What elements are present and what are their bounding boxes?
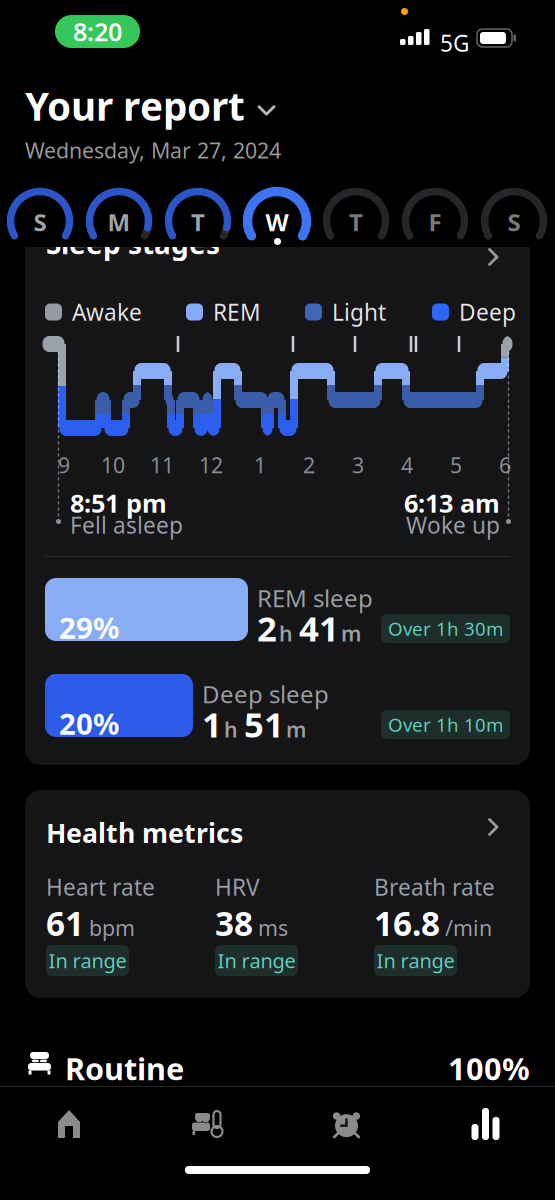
staticText: Heart rate (46, 872, 155, 902)
button[interactable]: F (0, 0, 555, 1200)
staticText: Breath rate (374, 872, 495, 902)
staticText: 8:51 pm (70, 486, 167, 520)
staticText: Your report (25, 80, 245, 131)
button[interactable]: M (0, 0, 555, 1200)
staticText: Sleep stages (46, 225, 220, 262)
button[interactable]: Sleep stages (46, 247, 508, 267)
staticText: REM sleep (257, 582, 373, 614)
staticText: In range (217, 947, 295, 974)
staticText: 11 (150, 451, 174, 479)
staticText: 5 (450, 451, 462, 479)
button[interactable]: W (0, 0, 555, 1200)
staticText: 20% (59, 704, 119, 743)
button[interactable]: T (0, 0, 555, 1200)
staticText: 1 (202, 701, 222, 747)
staticText: S (33, 206, 46, 238)
staticText: T (349, 206, 363, 238)
staticText: 12 (199, 451, 223, 479)
staticText: bpm (89, 914, 135, 942)
staticText: Routine (65, 1048, 184, 1089)
staticText: In range (376, 947, 454, 974)
staticText: 3 (352, 451, 364, 479)
staticText: REM (213, 297, 261, 327)
staticText: h (224, 715, 238, 743)
button[interactable] (138, 1095, 277, 1153)
staticText: 29% (59, 608, 119, 647)
button[interactable]: Health metrics (46, 815, 508, 841)
staticText: 100% (448, 1048, 530, 1089)
staticText: In range (48, 947, 126, 974)
button[interactable] (416, 1095, 555, 1153)
staticText: h (279, 619, 293, 647)
staticText: Light (332, 297, 386, 327)
button[interactable] (277, 1095, 416, 1153)
button[interactable]: 8:20 (55, 15, 140, 48)
button[interactable]: T (0, 0, 555, 1200)
staticText: Fell asleep (70, 510, 183, 540)
button[interactable]: Routine (25, 1048, 530, 1078)
staticText: 8:20 (73, 15, 122, 48)
staticText: Woke up (406, 510, 500, 540)
staticText: 5G (440, 28, 470, 58)
staticText: 41 (299, 605, 339, 651)
staticText: Over 1h 30m (388, 616, 503, 641)
staticText: 51 (244, 701, 284, 747)
staticText: T (191, 206, 205, 238)
staticText: Over 1h 10m (388, 712, 503, 737)
staticText: m (341, 619, 361, 647)
staticText: F (428, 206, 441, 238)
button[interactable]: S (0, 0, 555, 1200)
staticText: 4 (401, 451, 413, 479)
staticText: m (286, 715, 306, 743)
staticText: 61 (46, 901, 84, 945)
staticText: 16.8 (374, 901, 440, 945)
staticText: Wednesday, Mar 27, 2024 (25, 136, 281, 164)
staticText: 6:13 am (404, 486, 500, 520)
staticText: 1 (254, 451, 266, 479)
staticText: 6 (499, 451, 511, 479)
staticText: 10 (101, 451, 125, 479)
staticText: 2 (303, 451, 315, 479)
staticText: 2 (257, 605, 277, 651)
staticText: M (107, 206, 130, 238)
button[interactable] (0, 1095, 138, 1153)
staticText: /min (445, 914, 492, 942)
staticText: 9 (58, 451, 70, 479)
staticText: Awake (72, 297, 142, 327)
staticText: ms (258, 914, 288, 942)
button[interactable]: S (0, 0, 555, 1200)
staticText: S (507, 206, 520, 238)
staticText: Deep (459, 297, 516, 327)
staticText: HRV (215, 872, 260, 902)
staticText: W (265, 206, 288, 238)
staticText: Health metrics (46, 815, 243, 850)
staticText: Deep sleep (202, 678, 329, 710)
button[interactable]: Your report (25, 80, 275, 131)
staticText: 38 (215, 901, 253, 945)
